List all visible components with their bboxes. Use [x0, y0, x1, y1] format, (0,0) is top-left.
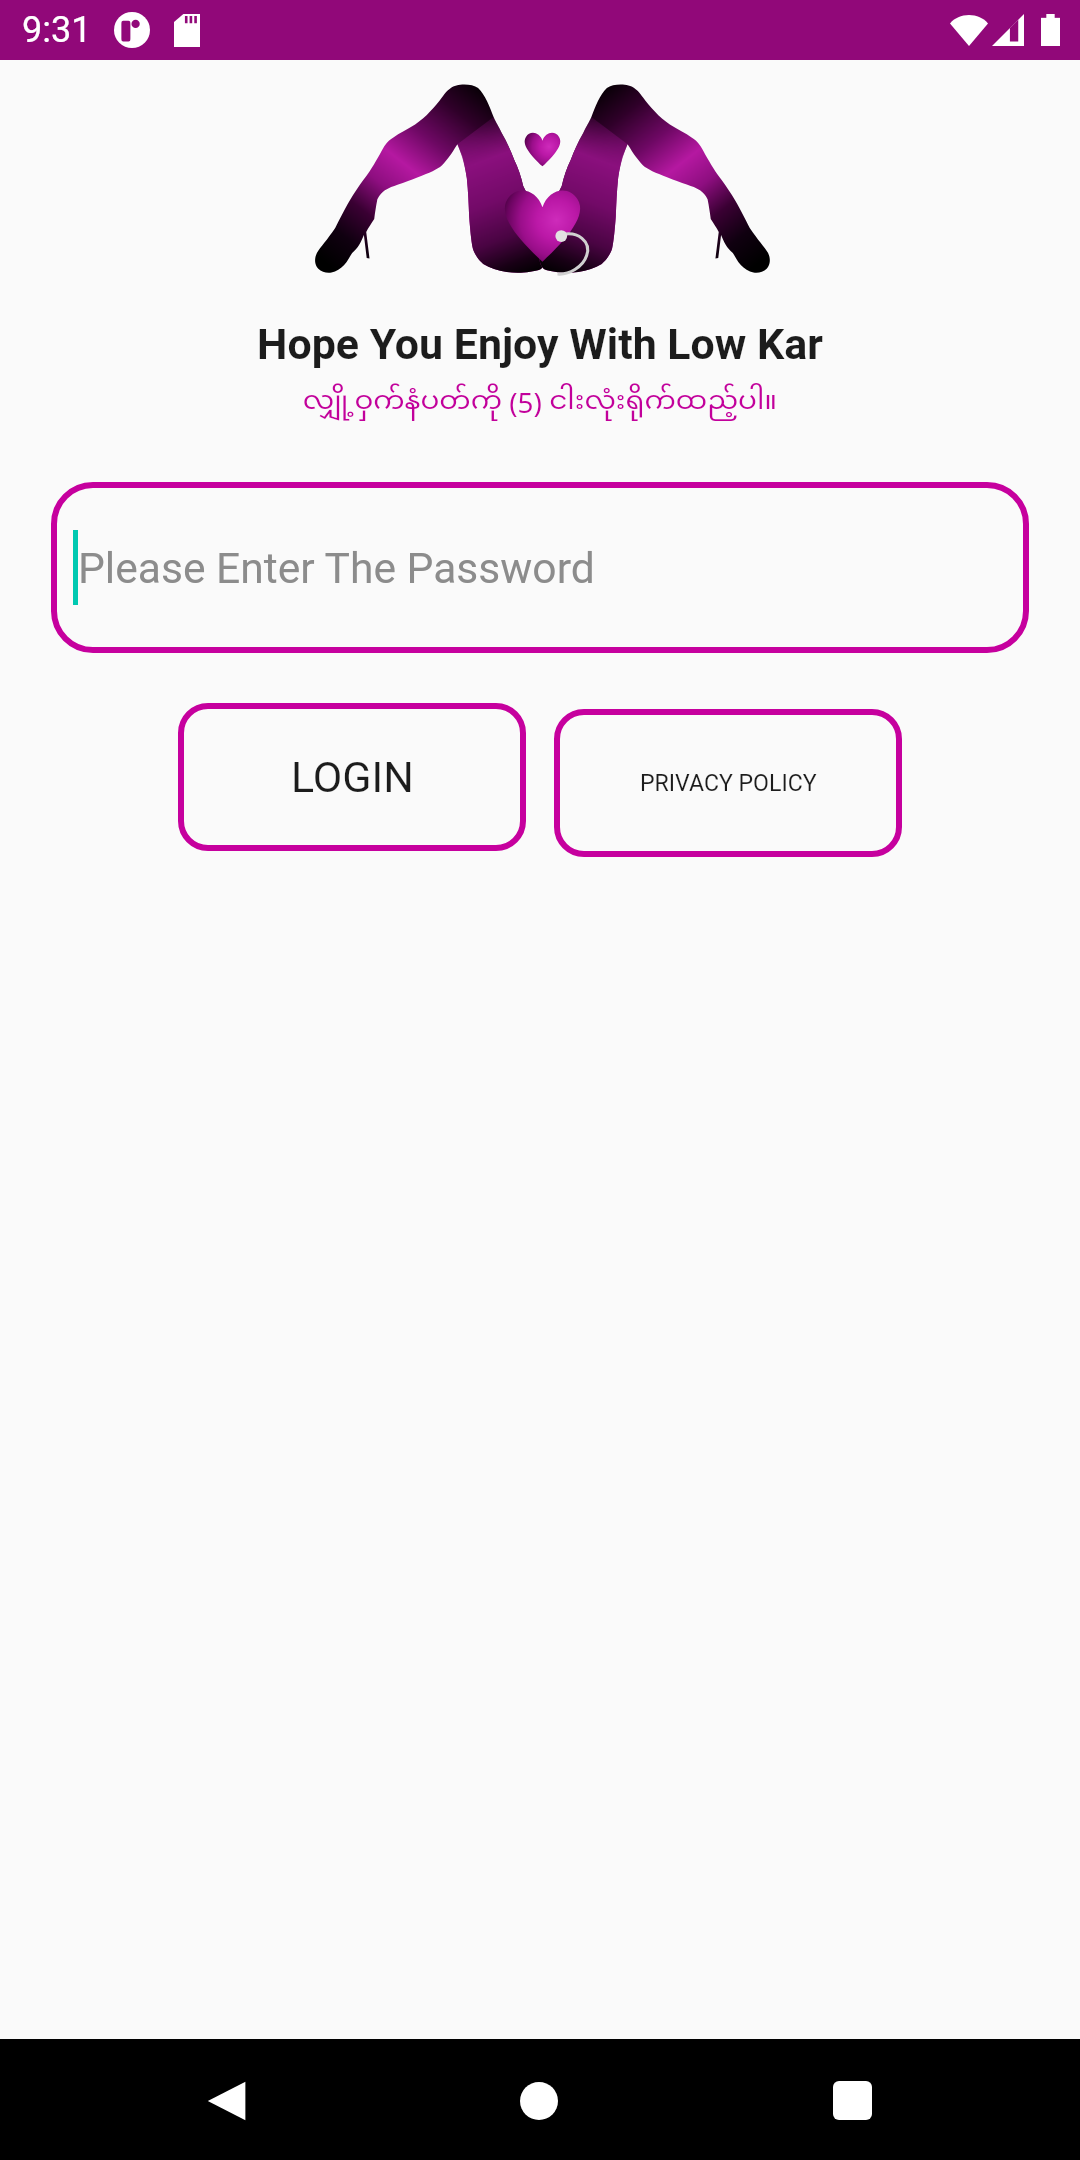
staticText: PRIVACY POLICY: [640, 770, 817, 797]
button[interactable]: PRIVACY POLICY: [554, 709, 902, 857]
button[interactable]: LOGIN: [178, 703, 526, 851]
staticText: 9:31: [22, 9, 92, 51]
staticText: Hope You Enjoy With Low Kar: [0, 319, 1080, 369]
button[interactable]: Home: [492, 2054, 585, 2147]
staticText: LOGIN: [291, 752, 414, 802]
staticText: Please Enter The Password: [78, 543, 595, 593]
staticText: လျှို့ဝှက်နံပတ်ကို (5) ငါးလုံးရိုက်ထည့်ပ…: [0, 383, 1080, 421]
button[interactable]: Recents: [806, 2054, 899, 2147]
button[interactable]: Back: [180, 2054, 273, 2147]
button[interactable]: Please Enter The Password: [51, 482, 1029, 653]
